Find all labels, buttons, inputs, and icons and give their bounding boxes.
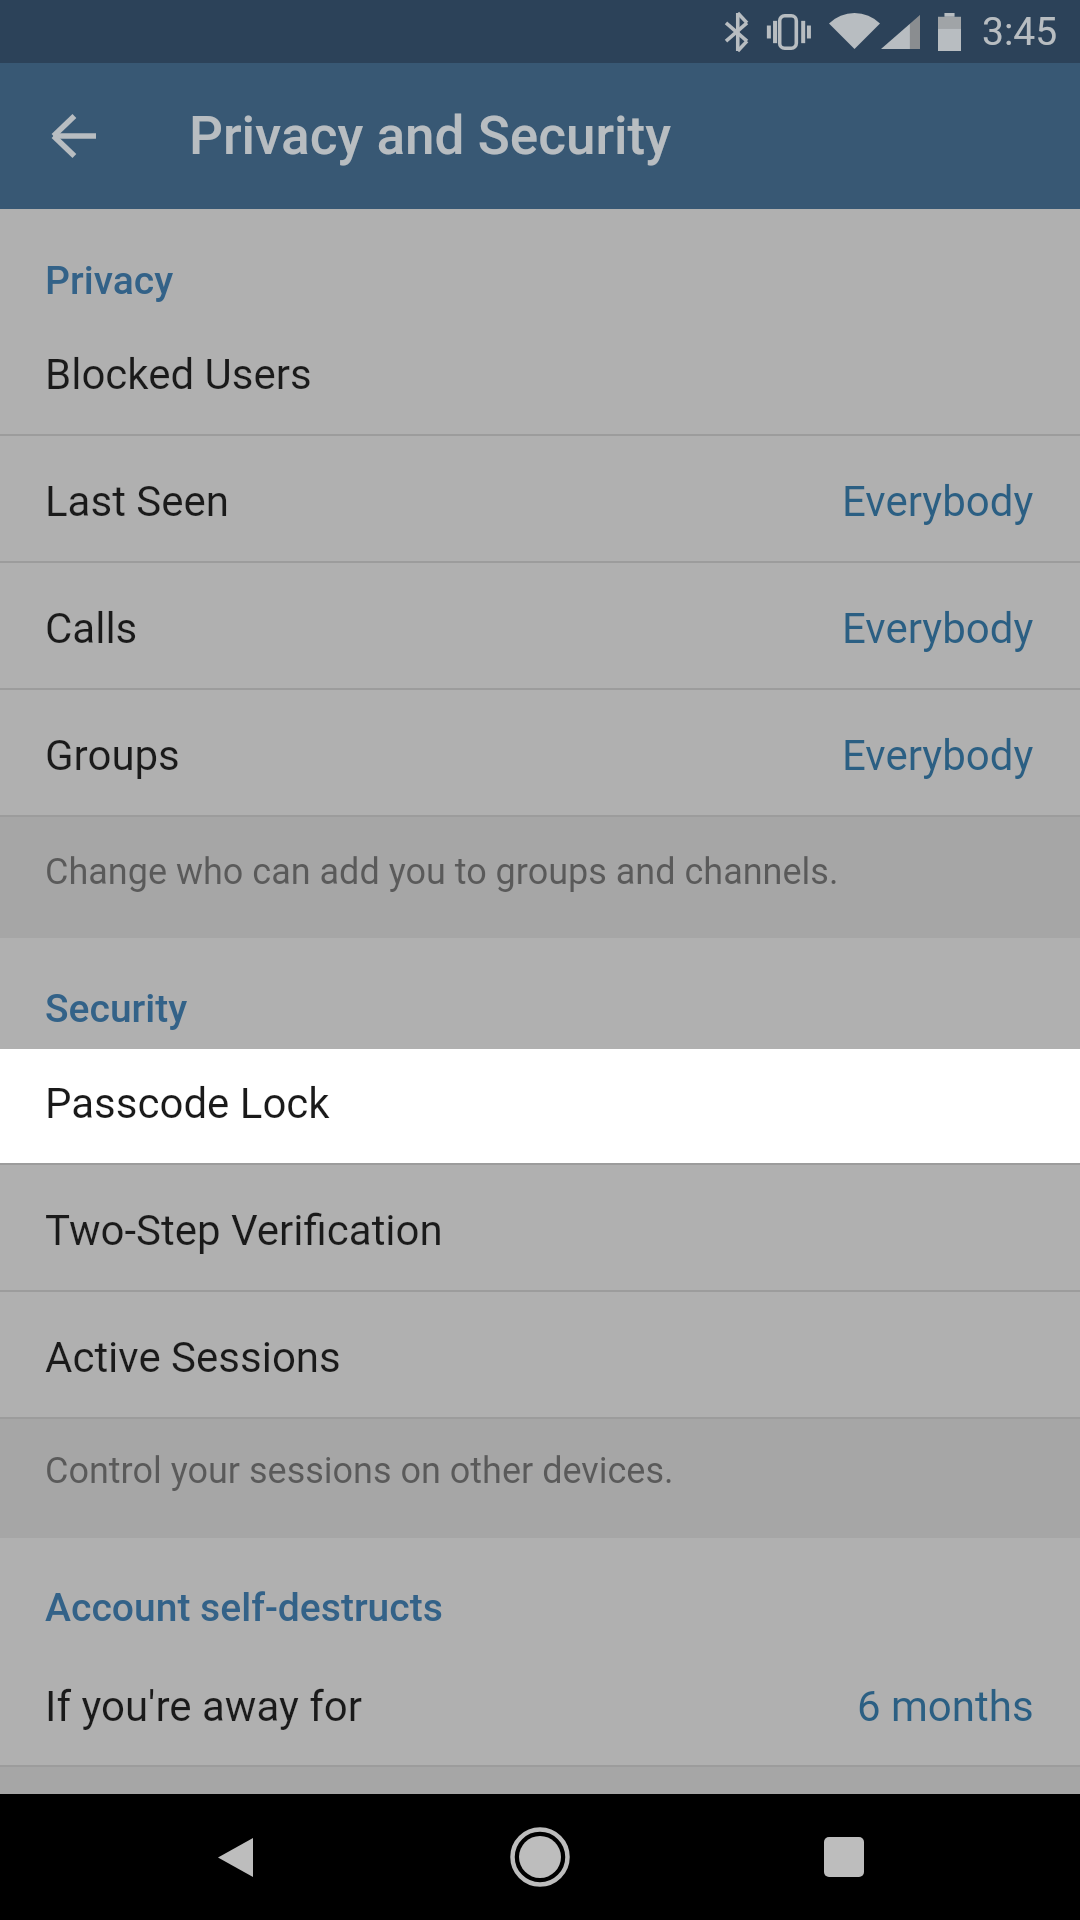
- button[interactable]: Groups: [0, 690, 1080, 815]
- button[interactable]: Passcode Lock: [0, 1049, 1080, 1163]
- button[interactable]: Back: [1, 64, 145, 208]
- staticText: Two-Step Verification: [45, 1206, 443, 1255]
- staticText: Privacy and Security: [189, 105, 672, 167]
- button[interactable]: Last Seen: [0, 436, 1080, 561]
- button[interactable]: Two-Step Verification: [0, 1165, 1080, 1290]
- staticText: Everybody: [842, 477, 1034, 526]
- button[interactable]: Active Sessions: [0, 1292, 1080, 1417]
- staticText: Account self-destructs: [45, 1585, 443, 1631]
- staticText: Blocked Users: [45, 350, 312, 399]
- staticText: Groups: [45, 731, 180, 780]
- staticText: Privacy: [45, 258, 174, 304]
- staticText: Everybody: [842, 604, 1034, 653]
- button[interactable]: Blocked Users: [0, 309, 1080, 434]
- staticText: Control your sessions on other devices.: [45, 1450, 674, 1492]
- staticText: Security: [45, 986, 188, 1032]
- staticText: Passcode Lock: [45, 1079, 330, 1128]
- button[interactable]: If you're away for: [0, 1642, 1080, 1765]
- button[interactable]: Calls: [0, 563, 1080, 688]
- button[interactable]: Home: [477, 1794, 603, 1920]
- staticText: Change who can add you to groups and cha…: [45, 851, 839, 893]
- button[interactable]: Recent apps: [781, 1794, 907, 1920]
- staticText: 6 months: [857, 1682, 1034, 1731]
- staticText: Last Seen: [45, 477, 229, 526]
- staticText: Active Sessions: [45, 1333, 341, 1382]
- staticText: Everybody: [842, 731, 1034, 780]
- staticText: If you're away for: [45, 1682, 363, 1731]
- staticText: 3:45: [982, 9, 1058, 55]
- button[interactable]: Back: [173, 1794, 299, 1920]
- staticText: Calls: [45, 604, 138, 653]
